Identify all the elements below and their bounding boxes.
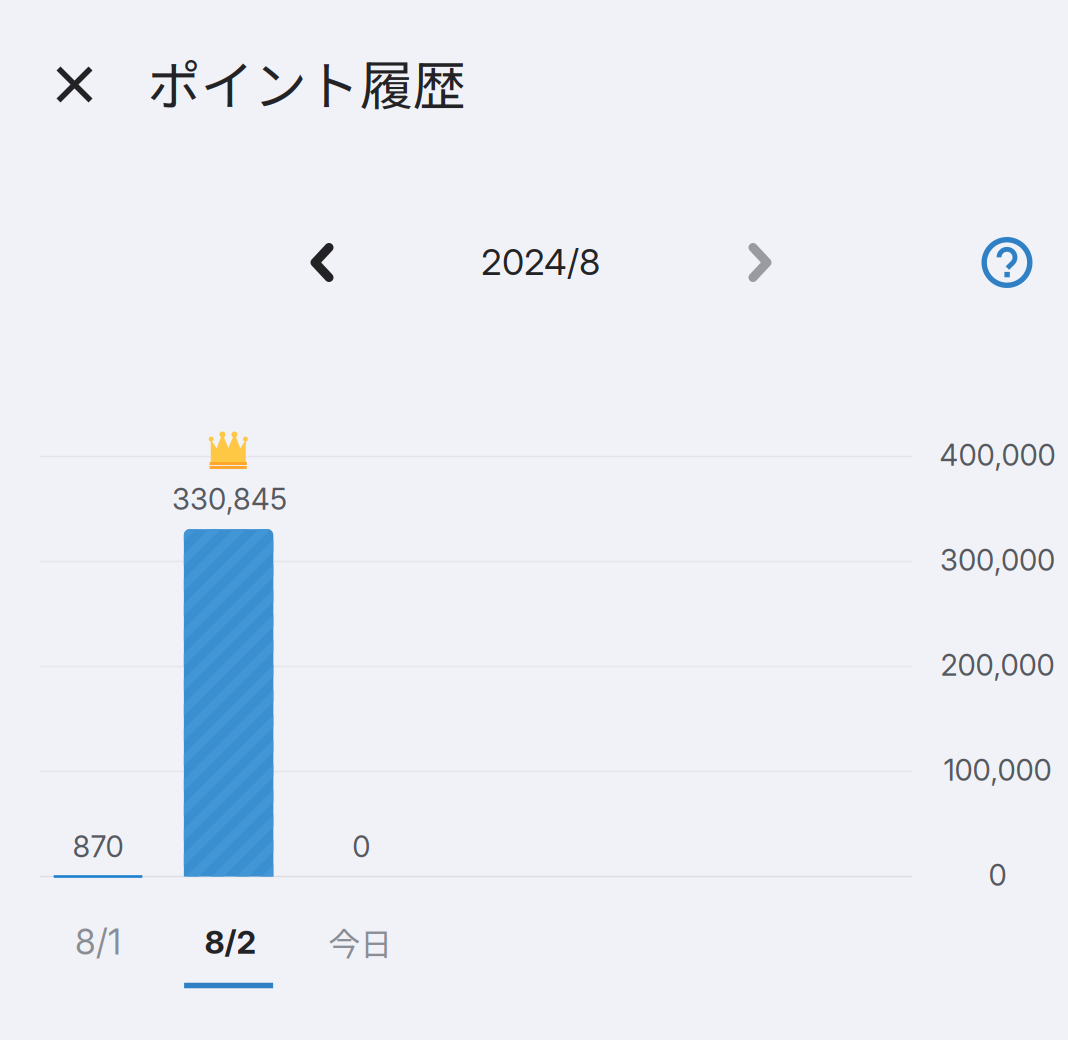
staticText: 200,000 (940, 647, 1054, 683)
button[interactable]: Previous month (283, 223, 361, 301)
staticText: 8/1 (75, 921, 121, 963)
staticText: 今日 (328, 919, 392, 965)
staticText: 100,000 (943, 752, 1051, 788)
staticText: 0 (352, 829, 370, 864)
staticText: 400,000 (939, 437, 1055, 473)
staticText: 2024/8 (481, 240, 600, 284)
staticText: 8/2 (205, 923, 257, 961)
button[interactable]: 今日 (300, 896, 420, 988)
button[interactable]: Next month (721, 223, 799, 301)
button[interactable]: 8/2 (171, 896, 291, 988)
button[interactable]: Close (39, 49, 109, 119)
button[interactable]: 8/1 (38, 896, 158, 988)
staticText: 0 (988, 857, 1006, 893)
button[interactable]: Help (971, 226, 1043, 298)
staticText: 330,845 (172, 481, 287, 517)
staticText: 870 (72, 829, 123, 864)
staticText: 300,000 (940, 542, 1055, 578)
staticText: ポイント履歴 (147, 43, 465, 121)
